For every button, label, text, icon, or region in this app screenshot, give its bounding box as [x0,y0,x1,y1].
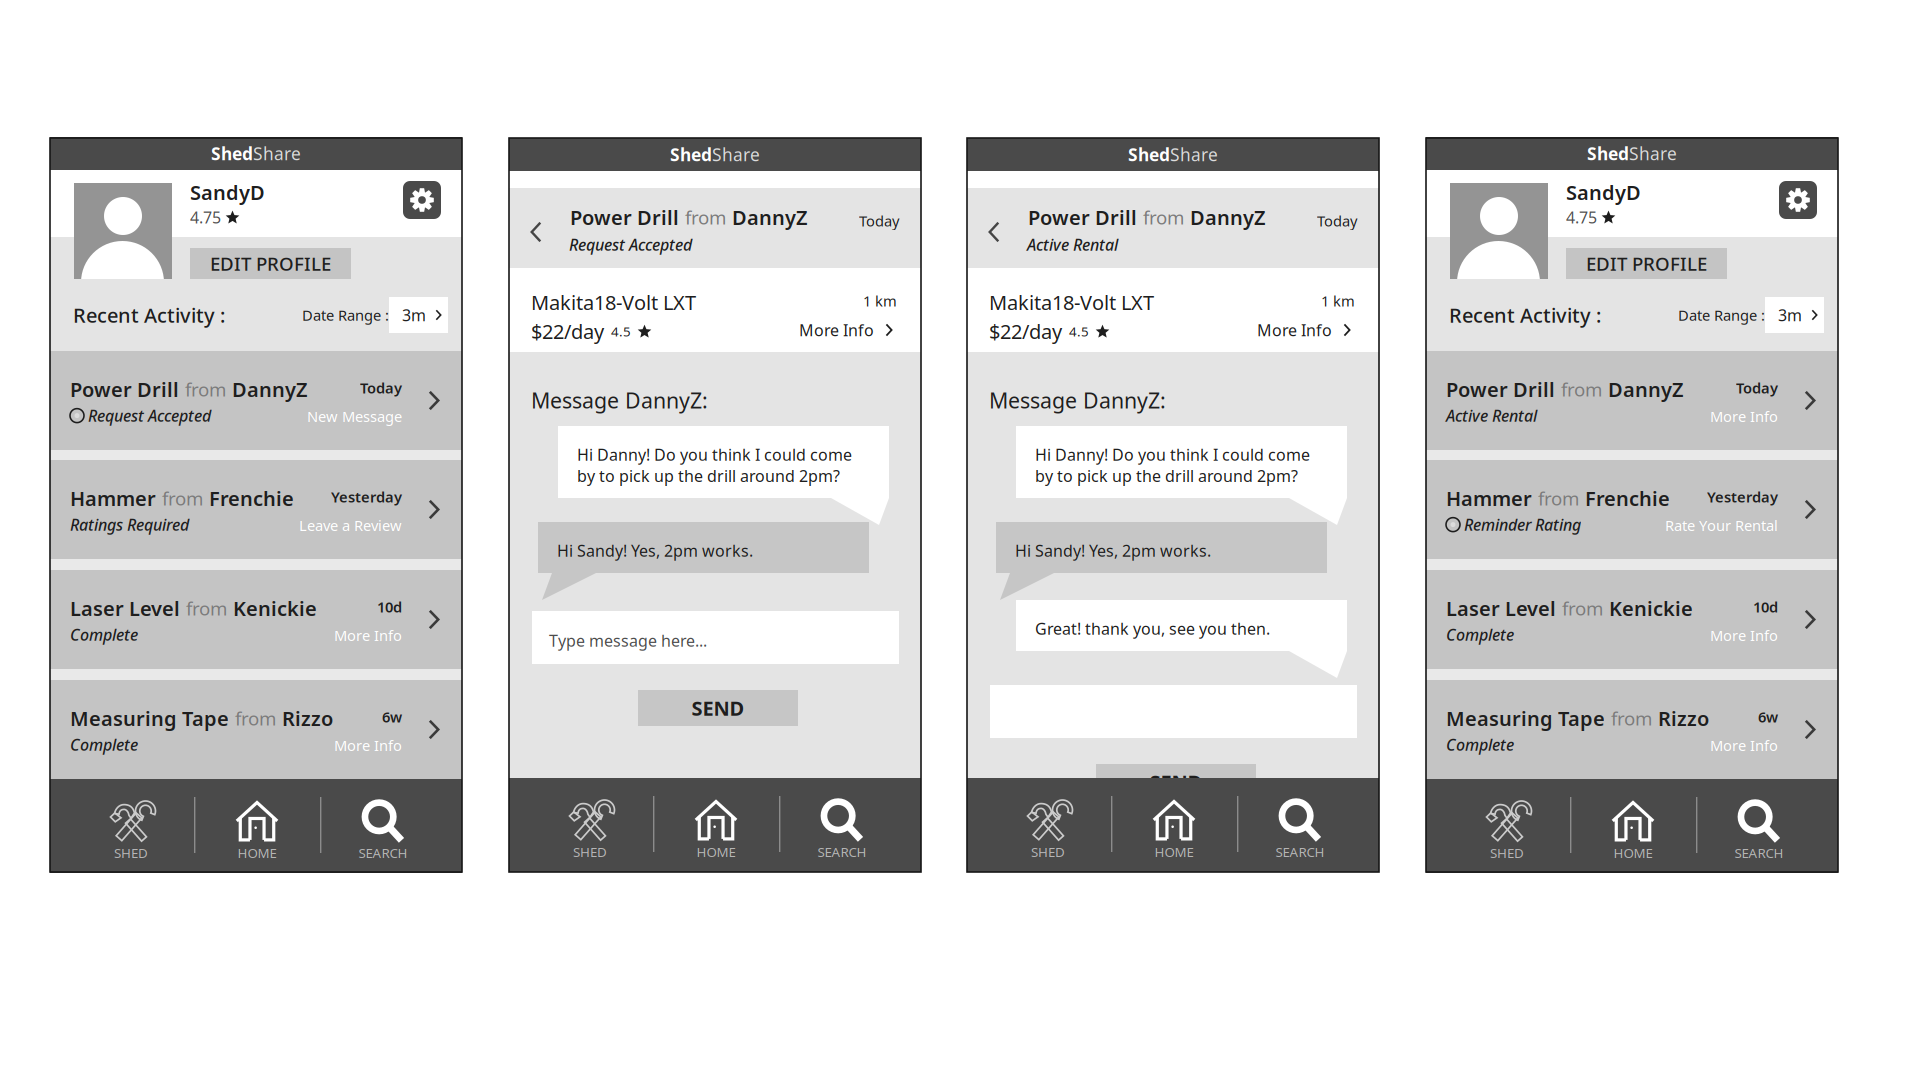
button[interactable]: SEARCH [320,779,446,873]
staticText: Rizzo [282,705,333,732]
staticText: from [185,377,226,402]
button[interactable]: Hammer [1426,460,1838,559]
staticText: from [1561,377,1602,402]
button[interactable]: More Info [967,321,1351,339]
staticText: More Info [1710,735,1778,755]
staticText: SandyD [1566,179,1641,206]
staticText: Date Range : [1678,305,1765,325]
staticText: Kenickie [233,595,317,622]
staticText: Message DannyZ: [531,386,708,414]
staticText: Today [1736,378,1778,397]
button[interactable]: 3m [389,297,448,333]
button[interactable]: SHED [68,779,194,873]
staticText: Hammer [70,485,156,512]
button[interactable]: Laser Level [1426,570,1838,669]
button[interactable]: SEARCH [779,778,905,872]
staticText: HOME [696,843,735,861]
staticText: from [186,596,227,621]
staticText: from [1143,205,1184,230]
staticText: Power Drill [1028,204,1137,231]
button[interactable]: HOME [194,779,320,873]
button[interactable]: SEND [1096,764,1256,800]
staticText: 1 km [863,291,897,310]
button[interactable]: Settings [403,181,441,219]
staticText: DannyZ [1608,376,1684,403]
button[interactable]: Back [978,211,1010,253]
staticText: Share [253,142,301,165]
staticText: SEARCH [1275,843,1324,861]
button[interactable]: SHED [1444,779,1570,873]
staticText: Today [1317,211,1357,230]
button[interactable]: Laser Level [50,570,462,669]
button[interactable]: HOME [1570,779,1696,873]
staticText: SEARCH [1734,844,1783,862]
staticText: DannyZ [1190,204,1266,231]
staticText: Laser Level [70,595,180,622]
staticText: Hammer [1446,485,1532,512]
staticText: SEARCH [358,844,407,862]
staticText: Complete [70,624,138,645]
staticText: from [685,205,726,230]
staticText: Shed [1587,142,1629,165]
staticText: Message DannyZ: [989,386,1166,414]
staticText: Rate Your Rental [1665,515,1778,535]
staticText: More Info [1257,319,1332,341]
staticText: Ratings Required [70,514,189,535]
staticText: 3m [1778,304,1802,326]
staticText: EDIT PROFILE [210,251,331,276]
button[interactable]: Back [520,211,552,253]
staticText: 6w [1758,707,1778,726]
staticText: HOME [1154,843,1193,861]
staticText: Reminder Rating [1464,514,1581,535]
staticText: 10d [377,597,402,616]
staticText: 4.5 [1069,322,1089,340]
staticText: Shed [211,142,253,165]
staticText: Complete [1446,734,1514,755]
button[interactable]: SEARCH [1237,778,1363,872]
staticText: from [162,486,203,511]
button[interactable]: EDIT PROFILE [1566,248,1727,279]
staticText: Power Drill [70,376,179,403]
staticText: Kenickie [1609,595,1693,622]
staticText: from [1538,486,1579,511]
staticText: SHED [114,844,148,862]
button[interactable]: Power Drill [1426,351,1838,450]
button[interactable]: SHED [985,778,1111,872]
staticText: Measuring Tape [1446,705,1605,732]
staticText: More Info [1710,625,1778,645]
button[interactable]: SEARCH [1696,779,1822,873]
button[interactable]: 3m [1765,297,1824,333]
staticText: Today [360,378,402,397]
button[interactable]: More Info [509,321,893,339]
staticText: Makita18-Volt LXT [531,289,696,316]
button[interactable]: Hammer [50,460,462,559]
button[interactable]: Measuring Tape [50,680,462,779]
staticText: Shed [670,143,712,166]
staticText: SEND [691,695,744,721]
button[interactable]: SEND [638,690,798,726]
staticText: Share [1170,143,1218,166]
staticText: Yesterday [1707,487,1778,506]
staticText: Active Rental [1446,405,1537,426]
staticText: Power Drill [1446,376,1555,403]
staticText: Today [859,211,899,230]
button[interactable]: HOME [1111,778,1237,872]
staticText: Yesterday [331,487,402,506]
staticText: SHED [1490,844,1524,862]
button[interactable]: EDIT PROFILE [190,248,351,279]
button[interactable]: Settings [1779,181,1817,219]
staticText: Type message here... [549,630,707,651]
staticText: Measuring Tape [70,705,229,732]
staticText: SandyD [190,179,265,206]
staticText: Recent Activity : [1449,302,1601,328]
staticText: Hi Danny! Do you think I could come by t… [1035,444,1310,486]
staticText: Frenchie [209,485,294,512]
button[interactable]: HOME [653,778,779,872]
staticText: 1 km [1321,291,1355,310]
button[interactable]: Measuring Tape [1426,680,1838,779]
staticText: $22/day [531,318,604,345]
staticText: Makita18-Volt LXT [989,289,1154,316]
button[interactable]: Power Drill [50,351,462,450]
staticText: 3m [402,304,426,326]
button[interactable]: SHED [527,778,653,872]
